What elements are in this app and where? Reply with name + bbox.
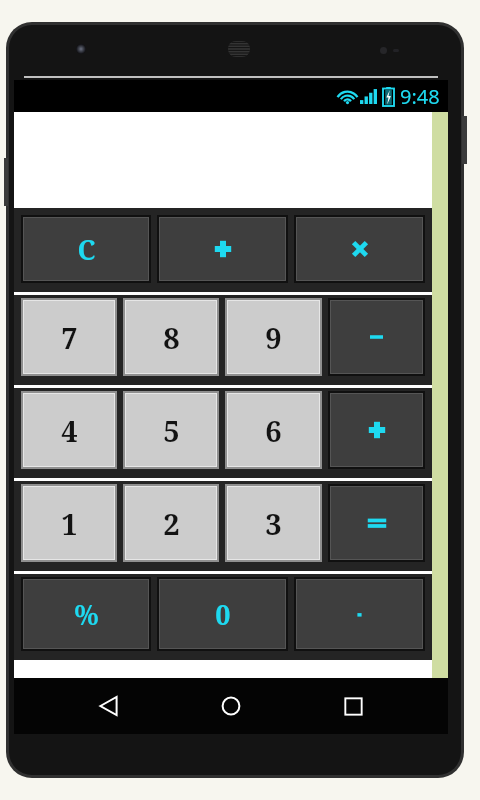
staticText: 2 [163, 504, 180, 543]
staticText: 9:48 [400, 83, 440, 110]
button[interactable]: 5 [125, 393, 217, 467]
staticText: 5 [163, 411, 180, 450]
staticText: 4 [61, 411, 78, 450]
staticText: C [77, 231, 96, 268]
button[interactable]: 9 [227, 300, 320, 374]
staticText: 0 [215, 596, 231, 633]
button[interactable]: + [159, 217, 286, 281]
button[interactable]: 8 [125, 300, 217, 374]
button[interactable]: 1 [23, 486, 115, 560]
button[interactable]: 7 [23, 300, 115, 374]
button[interactable]: 2 [125, 486, 217, 560]
button[interactable]: 4 [23, 393, 115, 467]
staticText: 1 [61, 504, 78, 543]
button[interactable]: Home [204, 679, 258, 733]
button[interactable]: Recents [326, 679, 380, 733]
button[interactable]: - [330, 300, 423, 374]
button[interactable]: C [23, 217, 149, 281]
staticText: 9 [265, 318, 282, 357]
button[interactable]: Back [82, 679, 136, 733]
staticText: 6 [265, 411, 282, 450]
staticText: 3 [265, 504, 282, 543]
staticText: 7 [61, 318, 78, 357]
button[interactable]: = [330, 486, 423, 560]
button[interactable]: . [296, 579, 423, 649]
button[interactable]: 0 [159, 579, 286, 649]
button[interactable]: + [330, 393, 423, 467]
staticText: % [74, 596, 99, 633]
staticText: 8 [163, 318, 180, 357]
button[interactable]: 3 [227, 486, 320, 560]
button[interactable]: 6 [227, 393, 320, 467]
button[interactable]: x [296, 217, 423, 281]
button[interactable]: % [23, 579, 149, 649]
